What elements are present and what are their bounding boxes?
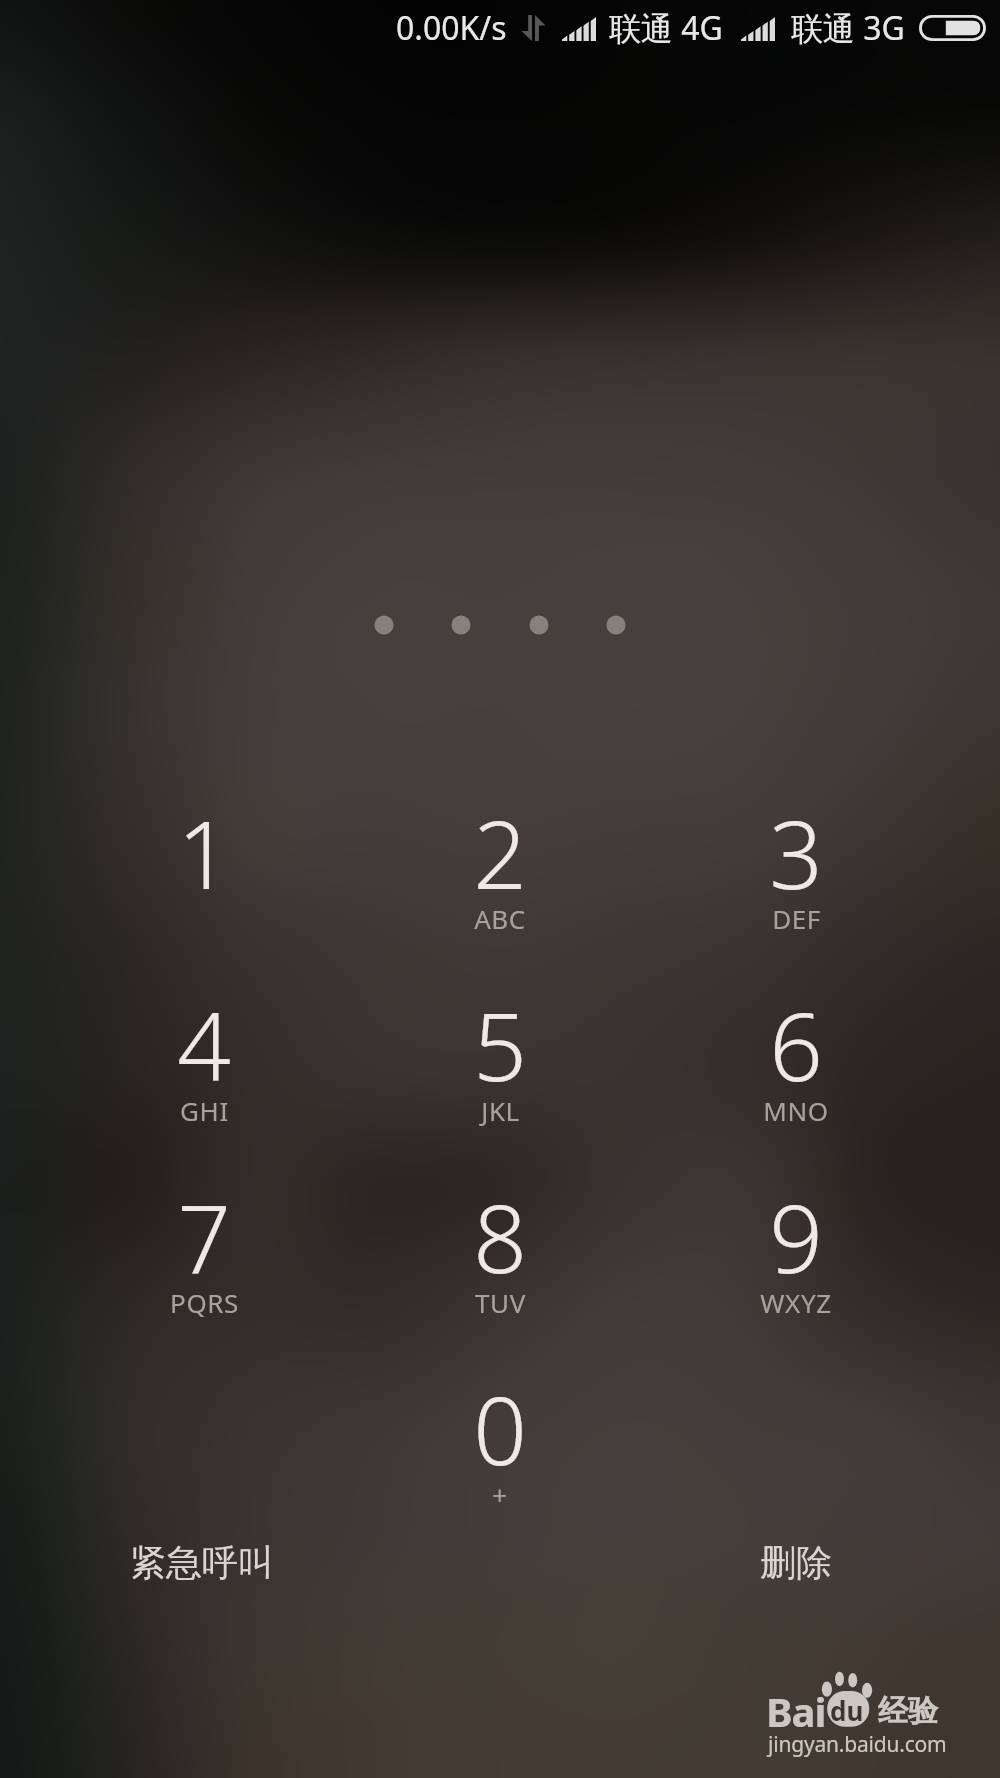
button[interactable]: 4 (56, 981, 352, 1173)
staticText: 0.00K/s (396, 6, 507, 50)
staticText: 紧急呼叫 (130, 1540, 274, 1585)
staticText: Bai (766, 1684, 826, 1738)
staticText: TUV (475, 1285, 526, 1320)
staticText: 3 (769, 789, 823, 917)
staticText: + (492, 1477, 508, 1512)
staticText: JKL (481, 1093, 520, 1128)
staticText: 9 (769, 1173, 823, 1301)
other: Baidu (820, 1670, 880, 1728)
staticText: jingyan.baidu.com (768, 1730, 947, 1759)
staticText: 8 (473, 1173, 527, 1301)
button[interactable]: 7 (56, 1173, 352, 1365)
staticText: 1 (177, 789, 231, 917)
staticText: du (830, 1693, 864, 1728)
staticText: ABC (474, 901, 526, 936)
staticText: MNO (763, 1093, 829, 1128)
button[interactable]: 0 (352, 1365, 648, 1557)
staticText: PQRS (170, 1285, 239, 1320)
staticText: 删除 (760, 1540, 832, 1585)
button[interactable]: 紧急呼叫 (87, 1516, 317, 1608)
button[interactable]: 3 (648, 789, 944, 981)
button[interactable]: 6 (648, 981, 944, 1173)
button[interactable]: 删除 (730, 1516, 862, 1608)
staticText: 0 (473, 1365, 527, 1493)
button[interactable]: 1 (56, 789, 352, 981)
staticText: 7 (177, 1173, 231, 1301)
staticText: 2 (473, 789, 527, 917)
staticText: 联通 4G (609, 6, 723, 50)
button[interactable]: 2 (352, 789, 648, 981)
staticText: 经验 (878, 1692, 938, 1730)
other: PIN entry, 4 digits (370, 611, 630, 639)
button[interactable]: 9 (648, 1173, 944, 1365)
staticText: WXYZ (760, 1285, 832, 1320)
button[interactable]: 8 (352, 1173, 648, 1365)
staticText: 6 (769, 981, 823, 1109)
button[interactable]: 5 (352, 981, 648, 1173)
staticText: GHI (180, 1093, 229, 1128)
staticText: DEF (772, 901, 821, 936)
staticText: 4 (177, 981, 231, 1109)
staticText: 5 (473, 981, 527, 1109)
staticText: 联通 3G (791, 6, 905, 50)
